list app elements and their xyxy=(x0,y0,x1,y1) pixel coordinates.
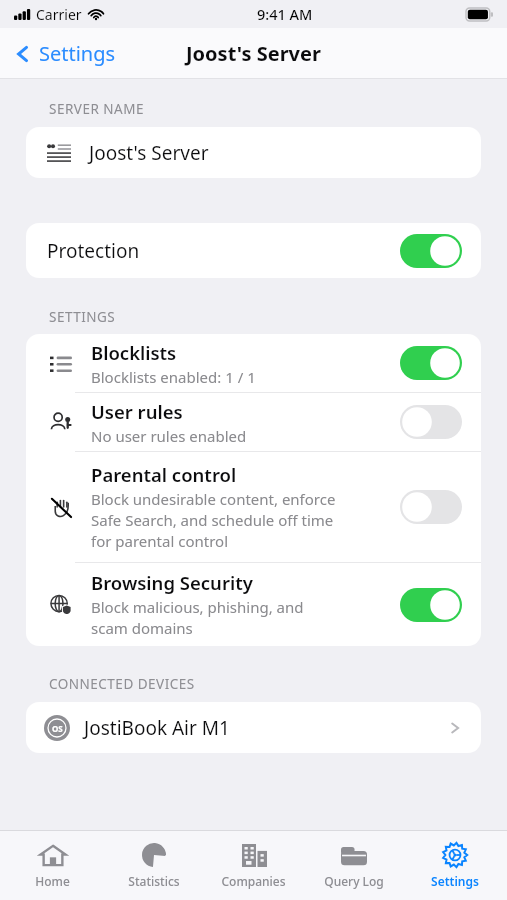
staticText: Block undesirable content, enforce Safe … xyxy=(91,489,336,552)
staticText: Block malicious, phishing, and scam doma… xyxy=(91,597,304,639)
other: Open device xyxy=(448,721,462,735)
button[interactable]: User rules xyxy=(26,393,481,451)
staticText: OS xyxy=(52,723,63,734)
staticText: SETTINGS xyxy=(49,308,116,326)
button[interactable]: OS xyxy=(26,702,481,753)
button[interactable]: Toggle off xyxy=(400,405,462,439)
staticText: Settings xyxy=(431,873,479,889)
button[interactable]: Parental control xyxy=(26,452,481,562)
button[interactable]: Companies xyxy=(206,831,301,900)
button[interactable]: Home xyxy=(5,831,100,900)
staticText: Joost's Server xyxy=(89,140,209,166)
button[interactable]: Toggle on xyxy=(400,588,462,622)
button[interactable]: Toggle on xyxy=(400,346,462,380)
button[interactable]: Joost's Server xyxy=(26,127,481,178)
staticText: 9:41 AM xyxy=(257,4,313,24)
button[interactable]: Query Log xyxy=(306,831,401,900)
staticText: Companies xyxy=(221,873,286,889)
button[interactable]: Statistics xyxy=(106,831,201,900)
button[interactable]: Browsing Security xyxy=(26,563,481,646)
button[interactable]: Toggle off xyxy=(400,490,462,524)
staticText: Home xyxy=(35,873,70,889)
staticText: Settings xyxy=(39,40,116,67)
button[interactable]: Settings xyxy=(12,28,116,79)
staticText: User rules xyxy=(91,399,183,424)
staticText: Joost's Server xyxy=(186,40,321,67)
button[interactable]: Blocklists xyxy=(26,334,481,392)
staticText: Blocklists enabled: 1 / 1 xyxy=(91,367,256,387)
staticText: Protection xyxy=(47,238,140,264)
staticText: JostiBook Air M1 xyxy=(84,715,230,741)
staticText: SERVER NAME xyxy=(49,100,144,118)
staticText: No user rules enabled xyxy=(91,426,247,446)
button[interactable]: Protection xyxy=(26,223,481,278)
button[interactable]: Settings xyxy=(407,831,502,900)
staticText: Carrier xyxy=(36,5,82,24)
staticText: Browsing Security xyxy=(91,570,253,595)
button[interactable]: Toggle on xyxy=(400,234,462,268)
staticText: Query Log xyxy=(324,873,384,889)
staticText: Parental control xyxy=(91,462,237,487)
staticText: Statistics xyxy=(128,873,180,889)
staticText: CONNECTED DEVICES xyxy=(49,675,195,693)
staticText: Blocklists xyxy=(91,340,177,365)
